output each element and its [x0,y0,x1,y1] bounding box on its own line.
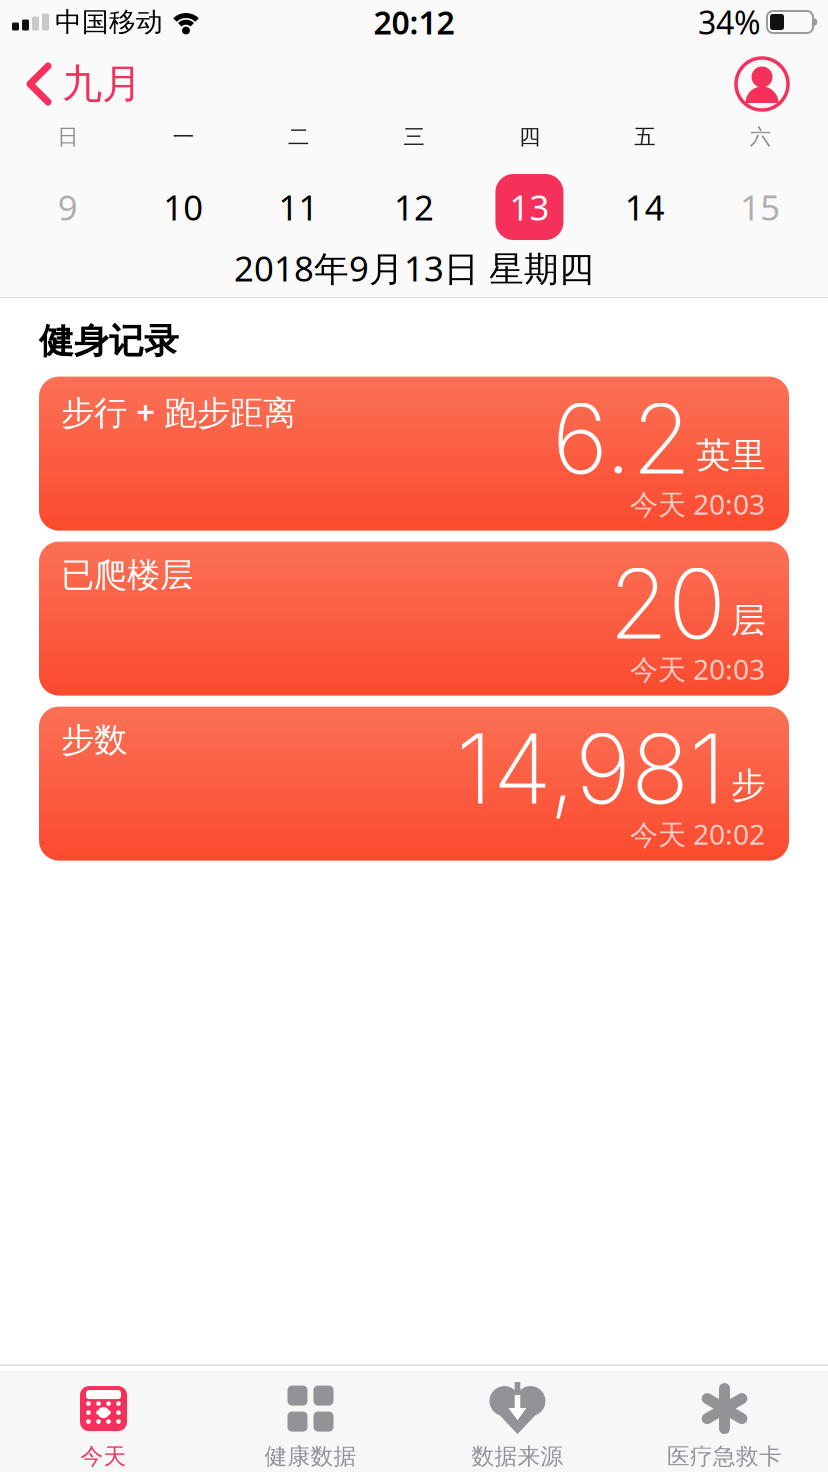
staticText: 14,981 [456,711,726,827]
staticText: 12 [394,184,434,230]
staticText: 步数 [61,720,127,760]
staticText: 今天 20:03 [630,485,765,523]
staticText: 层 [731,599,766,642]
staticText: 五 [634,124,655,150]
staticText: 健康数据 [264,1443,356,1470]
staticText: 20 [609,546,726,662]
staticText: 英里 [696,434,766,477]
staticText: 三 [403,124,424,150]
staticText: 已爬楼层 [61,555,193,595]
staticText: 步 [731,764,766,807]
staticText: 九月 [62,59,142,108]
staticText: 13 [509,184,549,230]
staticText: 数据来源 [471,1443,563,1470]
staticText: 11 [279,184,319,230]
staticText: 今天 [80,1443,126,1470]
staticText: 今天 20:03 [630,650,765,688]
staticText: 2018年9月13日 星期四 [234,245,594,291]
staticText: 6.2 [552,381,691,497]
staticText: 健身记录 [39,320,179,363]
staticText: 10 [163,184,203,230]
staticText: 日 [57,124,78,150]
button[interactable]: 健康数据 [207,1384,414,1470]
staticText: 一 [173,124,194,150]
staticText: 四 [519,124,540,150]
staticText: 15 [740,184,780,230]
button[interactable]: 今天 [0,1384,207,1470]
staticText: 医疗急救卡 [667,1443,782,1470]
button[interactable]: 步数 [39,707,789,861]
staticText: 9 [58,184,78,230]
staticText: 今天 20:02 [630,815,765,853]
staticText: 六 [750,124,771,150]
staticText: 14 [625,184,665,230]
button[interactable]: 数据来源 [414,1384,621,1470]
staticText: 34% [698,1,761,43]
staticText: 步行 + 跑步距离 [61,390,296,434]
staticText: 20:12 [373,1,454,43]
staticText: 二 [288,124,309,150]
button[interactable] [736,58,788,110]
staticText: 中国移动 [55,6,163,38]
button[interactable]: 已爬楼层 [39,542,789,696]
button[interactable]: 医疗急救卡 [621,1384,828,1470]
button[interactable]: 九月 [26,59,142,108]
button[interactable]: 步行 + 跑步距离 [39,377,789,531]
